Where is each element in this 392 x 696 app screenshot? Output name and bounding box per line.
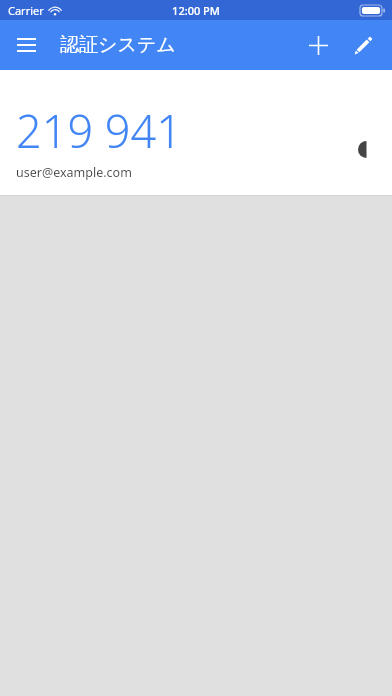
button[interactable]: Edit: [344, 26, 382, 64]
button[interactable]: Menu: [8, 27, 44, 63]
other: Time remaining: [358, 141, 375, 158]
button[interactable]: Add account: [299, 26, 337, 64]
staticText: 219 941: [16, 100, 182, 161]
staticText: user@example.com: [16, 164, 132, 181]
staticText: 12:00 PM: [172, 3, 220, 18]
staticText: 認証システム: [60, 33, 176, 57]
staticText: Carrier: [8, 3, 44, 18]
button[interactable]: 219 941: [0, 70, 392, 196]
